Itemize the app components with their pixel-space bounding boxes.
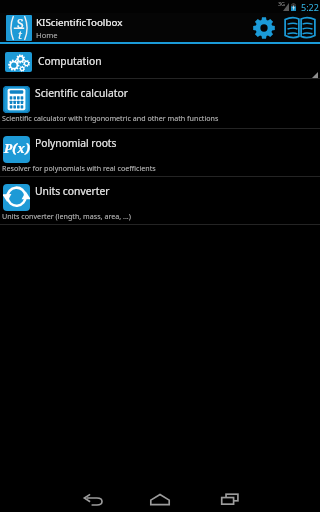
staticText: Scientific calculator with trigonometric… [2, 113, 219, 123]
button[interactable]: Units converter [0, 177, 320, 225]
staticText: Units converter (length, mass, area, ...… [2, 211, 131, 221]
staticText: t [18, 27, 23, 41]
staticText: Units converter [35, 184, 110, 198]
staticText: 3G [278, 0, 286, 7]
staticText: Home [36, 30, 58, 40]
button[interactable]: Help [281, 13, 319, 42]
button[interactable]: P(x) [0, 129, 320, 177]
button[interactable]: Recent apps [212, 482, 248, 512]
staticText: Resolver for polynomials with real coeff… [2, 163, 156, 173]
staticText: P(x) [4, 140, 30, 157]
staticText: KIScientificToolbox [36, 16, 123, 29]
staticText: Computation [38, 54, 102, 68]
button[interactable]: Computation [0, 44, 320, 78]
button[interactable]: App icon, navigate up [6, 15, 32, 41]
staticText: Polynomial roots [35, 136, 117, 150]
button[interactable]: Settings [249, 13, 278, 42]
button[interactable]: Back [75, 482, 111, 512]
staticText: Scientific calculator [35, 86, 128, 100]
button[interactable]: Home [142, 482, 178, 512]
staticText: S [17, 15, 24, 31]
button[interactable]: Scientific calculator [0, 79, 320, 129]
staticText: 5:22 [301, 1, 319, 13]
